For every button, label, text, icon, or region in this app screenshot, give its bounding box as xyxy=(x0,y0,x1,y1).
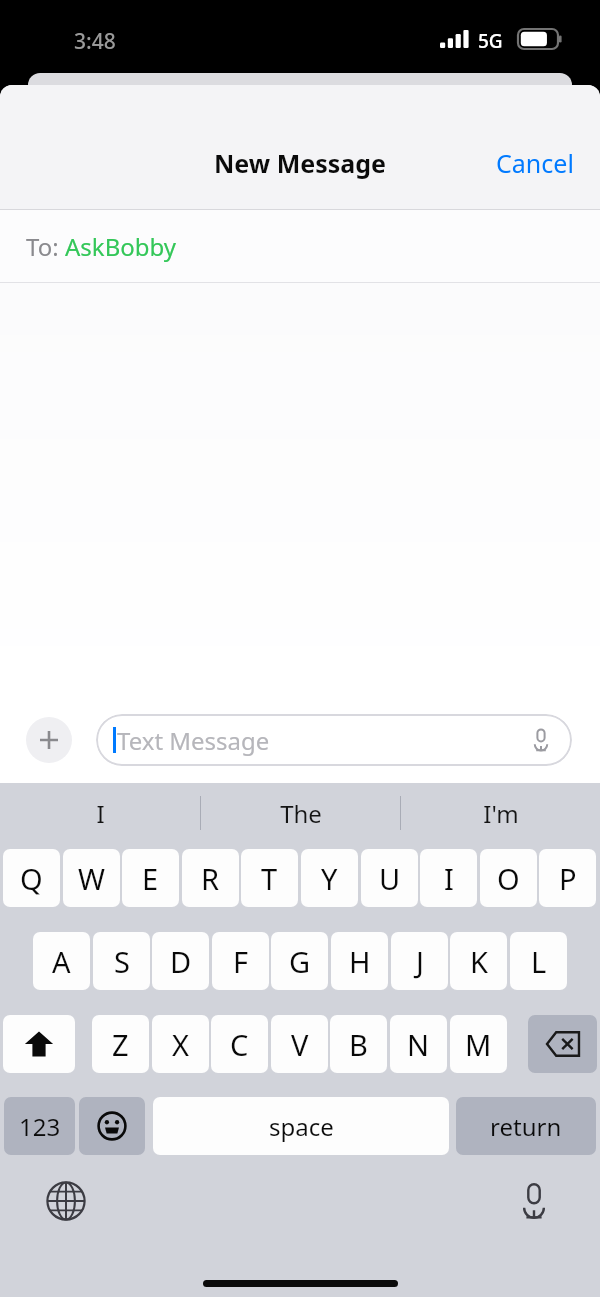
staticText: I xyxy=(96,797,105,830)
staticText: D xyxy=(170,942,192,981)
button[interactable]: I'm xyxy=(401,783,600,843)
staticText: I'm xyxy=(483,797,519,830)
staticText: 3:48 xyxy=(74,27,116,56)
staticText: return xyxy=(490,1110,562,1143)
staticText: E xyxy=(142,859,159,898)
staticText: L xyxy=(531,942,547,981)
button[interactable]: Shift xyxy=(3,1015,75,1073)
button[interactable]: To: xyxy=(0,210,600,283)
staticText: H xyxy=(349,942,371,981)
staticText: Q xyxy=(20,859,43,898)
button[interactable]: M xyxy=(450,1015,507,1073)
button[interactable]: S xyxy=(93,932,150,990)
button[interactable]: space xyxy=(153,1097,449,1155)
staticText: U xyxy=(379,859,401,898)
staticText: T xyxy=(261,859,278,898)
staticText: To: xyxy=(26,230,65,263)
staticText: M xyxy=(465,1025,492,1064)
button[interactable]: Text Message xyxy=(96,714,572,766)
button[interactable]: V xyxy=(271,1015,328,1073)
staticText: R xyxy=(201,859,220,898)
staticText: C xyxy=(230,1025,249,1064)
button[interactable]: G xyxy=(271,932,328,990)
staticText: O xyxy=(497,859,520,898)
button[interactable]: B xyxy=(330,1015,387,1073)
button[interactable]: Z xyxy=(92,1015,149,1073)
staticText: I xyxy=(444,859,454,898)
staticText: J xyxy=(416,942,424,981)
button[interactable]: E xyxy=(122,849,179,907)
button[interactable]: D xyxy=(152,932,209,990)
button[interactable]: P xyxy=(539,849,596,907)
button[interactable]: Cancel xyxy=(470,136,600,190)
button[interactable]: Q xyxy=(3,849,60,907)
staticText: Y xyxy=(321,859,338,898)
button[interactable]: return xyxy=(456,1097,596,1155)
staticText: S xyxy=(114,942,130,981)
staticText: B xyxy=(349,1025,368,1064)
staticText: AskBobby xyxy=(65,230,177,263)
button[interactable]: Backspace xyxy=(528,1015,597,1073)
button[interactable]: W xyxy=(63,849,120,907)
staticText: 123 xyxy=(19,1110,61,1143)
staticText: Text Message xyxy=(117,724,270,757)
staticText: The xyxy=(280,797,322,830)
staticText: Z xyxy=(112,1025,129,1064)
staticText: V xyxy=(291,1025,309,1064)
button[interactable]: Dictate xyxy=(526,725,556,755)
button[interactable]: F xyxy=(212,932,269,990)
staticText: X xyxy=(172,1025,189,1064)
button[interactable]: H xyxy=(331,932,388,990)
button[interactable]: J xyxy=(391,932,448,990)
button[interactable]: X xyxy=(152,1015,209,1073)
button[interactable]: C xyxy=(211,1015,268,1073)
button[interactable]: T xyxy=(241,849,298,907)
button[interactable]: N xyxy=(390,1015,447,1073)
staticText: New Message xyxy=(214,146,386,180)
staticText: space xyxy=(269,1110,334,1143)
button[interactable]: Add attachment xyxy=(26,717,72,763)
button[interactable]: A xyxy=(33,932,90,990)
button[interactable]: 123 xyxy=(4,1097,75,1155)
staticText: W xyxy=(78,859,105,898)
button[interactable]: I xyxy=(420,849,477,907)
button[interactable]: L xyxy=(510,932,567,990)
button[interactable]: K xyxy=(450,932,507,990)
button[interactable]: U xyxy=(361,849,418,907)
button[interactable]: The xyxy=(201,783,400,843)
staticText: A xyxy=(52,942,71,981)
staticText: P xyxy=(559,859,577,898)
button[interactable]: R xyxy=(182,849,239,907)
staticText: F xyxy=(233,942,249,981)
staticText: 5G xyxy=(478,28,503,54)
button[interactable]: Emoji xyxy=(79,1097,145,1155)
button[interactable]: Change keyboard xyxy=(40,1175,92,1227)
button[interactable]: I xyxy=(0,783,200,843)
staticText: Cancel xyxy=(496,146,574,180)
staticText: G xyxy=(289,942,311,981)
button[interactable]: Dictation xyxy=(508,1175,560,1227)
staticText: N xyxy=(407,1025,430,1064)
button[interactable]: Y xyxy=(301,849,358,907)
button[interactable]: O xyxy=(480,849,537,907)
staticText: K xyxy=(470,942,488,981)
